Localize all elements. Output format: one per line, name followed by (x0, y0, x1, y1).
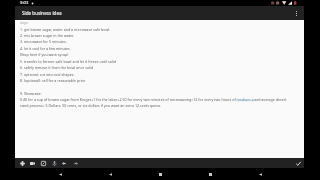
button[interactable]: Add photo (27, 158, 37, 168)
button[interactable]: Hide keyboard (54, 168, 66, 180)
staticText: steps (20, 21, 28, 25)
button[interactable]: Undo (59, 158, 69, 168)
staticText: 4. let it cool for a few minutes (20, 46, 70, 51)
button[interactable]: Change colour (17, 158, 27, 168)
button[interactable]: Home (154, 168, 166, 180)
button[interactable]: Back (104, 168, 116, 180)
staticText: 1. get brown sugar, water and a microwav… (20, 27, 111, 32)
staticText: 3. microwave for 5 minutes. (20, 39, 67, 44)
staticText: 6. safely remove it from the bowl once s… (20, 65, 94, 70)
staticText: 9:03 (20, 0, 29, 6)
button[interactable]: Recents (204, 168, 216, 180)
button[interactable]: Done (293, 158, 303, 168)
staticText: 7. optional: cut into cool shapes. (20, 72, 75, 77)
staticText: Side business idea (22, 10, 62, 16)
staticText: 9. Showcase: (20, 91, 42, 96)
staticText: (Stop here if you want syrup) (20, 52, 69, 57)
button[interactable]: Voice recording (49, 158, 59, 168)
button[interactable]: Draw (38, 158, 48, 168)
staticText: 8. (optional): sell for a reasonable pri… (20, 78, 86, 83)
staticText: 0.40 for a cup of brown sugar from Kroge… (20, 97, 296, 108)
button[interactable]: Menu (254, 168, 266, 180)
staticText: 2. mix brown sugar in the water. (20, 33, 74, 38)
button[interactable]: More options (291, 8, 302, 19)
button[interactable]: Redo (70, 158, 80, 168)
staticText: 5. transfer to freezer safe bowl and let… (20, 59, 116, 64)
